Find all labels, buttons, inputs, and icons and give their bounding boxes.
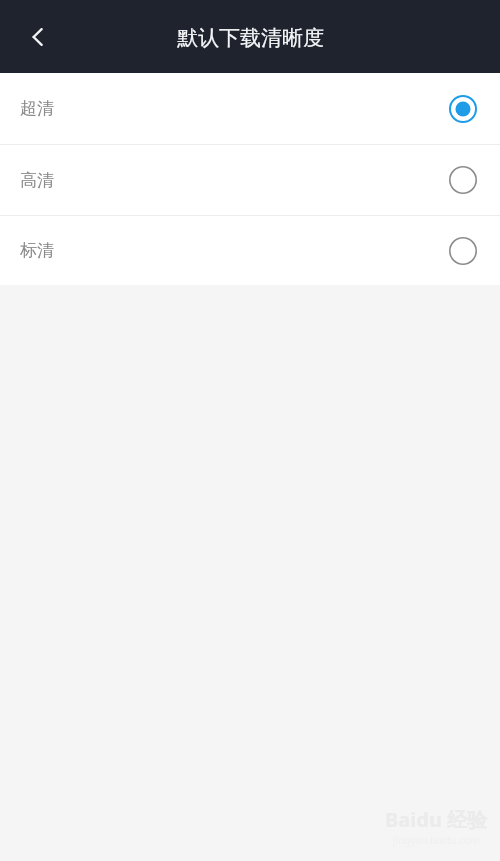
staticText: Baidu 经验 <box>385 806 488 833</box>
button[interactable]: 超清 <box>0 73 500 144</box>
button[interactable]: 标清 <box>0 216 500 285</box>
staticText: 超清 <box>20 98 54 119</box>
staticText: 高清 <box>20 170 54 191</box>
button[interactable]: 高清 <box>0 145 500 215</box>
staticText: 默认下载清晰度 <box>177 25 324 51</box>
button[interactable]: Back <box>10 9 66 65</box>
staticText: 标清 <box>20 240 54 261</box>
